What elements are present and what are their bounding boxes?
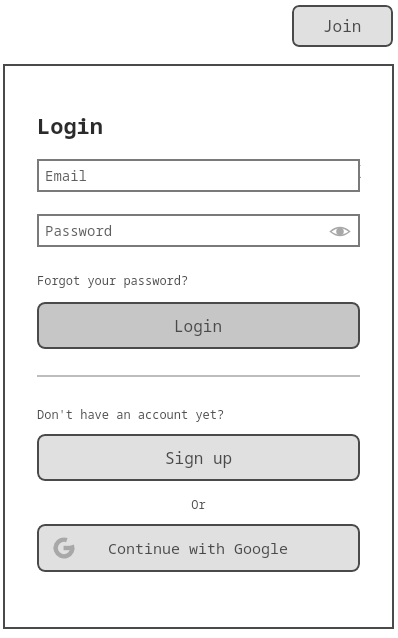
staticText: Login bbox=[174, 315, 223, 337]
button[interactable]: Login bbox=[37, 302, 360, 349]
staticText: X bbox=[351, 160, 362, 183]
staticText: Login bbox=[37, 110, 104, 140]
button[interactable]: Forgot your password? bbox=[37, 272, 189, 288]
staticText: Don't have an account yet? bbox=[37, 406, 225, 422]
button[interactable]: Close bbox=[339, 154, 373, 188]
button[interactable]: Show password bbox=[328, 219, 352, 243]
staticText: Sign up bbox=[165, 447, 233, 469]
staticText: Forgot your password? bbox=[37, 272, 189, 288]
button[interactable]: Password bbox=[37, 214, 360, 247]
staticText: Email bbox=[45, 166, 87, 185]
button[interactable]: Continue with Google bbox=[37, 524, 360, 572]
staticText: Password bbox=[45, 221, 113, 240]
staticText: Continue with Google bbox=[108, 538, 289, 558]
staticText: Join bbox=[323, 15, 362, 37]
button[interactable]: Sign up bbox=[37, 434, 360, 481]
button[interactable]: Join bbox=[292, 5, 393, 47]
button[interactable]: Email bbox=[37, 159, 360, 192]
staticText: Or bbox=[3, 496, 394, 512]
